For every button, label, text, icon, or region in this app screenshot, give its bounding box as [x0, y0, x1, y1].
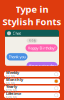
staticText: Happy Birthday!	[27, 45, 55, 51]
staticText: Type in	[15, 3, 48, 15]
staticText: Today	[28, 39, 35, 42]
staticText: $49.99	[6, 96, 17, 100]
staticText: $4.99	[6, 75, 15, 79]
staticText: Weekly	[6, 70, 19, 75]
staticText: Yearly	[6, 84, 17, 89]
staticText: Stylish Fonts	[2, 15, 61, 28]
staticText: $9.99	[6, 82, 15, 86]
button[interactable]: Monthly	[4, 78, 60, 84]
staticText: Thank you	[8, 54, 25, 59]
staticText: $29.99	[6, 89, 17, 93]
button[interactable]: Yearly	[4, 85, 60, 91]
staticText: Monthly	[6, 77, 23, 82]
staticText: Lifetime	[6, 91, 21, 96]
staticText: Chat	[12, 31, 20, 36]
button[interactable]: Weekly	[4, 71, 60, 77]
staticText: Have a nice day	[28, 63, 55, 68]
button[interactable]: Lifetime	[4, 92, 60, 98]
